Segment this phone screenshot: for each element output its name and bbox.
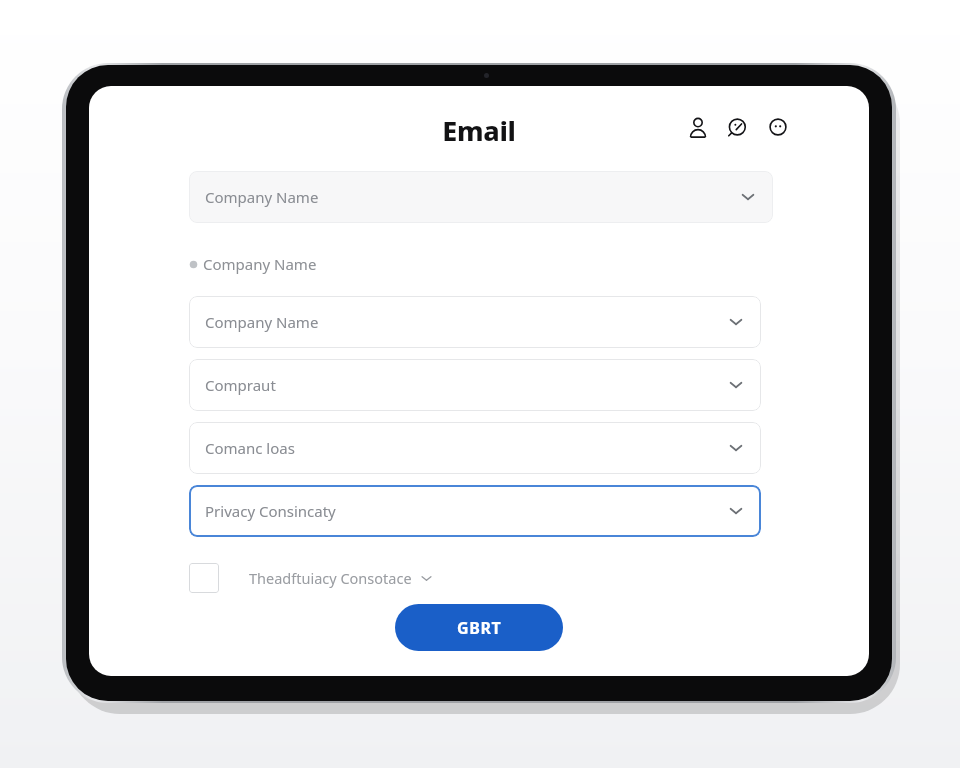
staticText: Compraut <box>205 375 276 395</box>
staticText: Privacy Consincaty <box>205 501 336 521</box>
button[interactable]: More options <box>763 112 793 142</box>
staticText: GBRT <box>457 617 502 639</box>
staticText: Company Name <box>205 187 319 207</box>
staticText: Comanc loas <box>205 438 295 458</box>
button[interactable]: Comanc loas <box>189 422 761 474</box>
button[interactable]: Compraut <box>189 359 761 411</box>
button[interactable]: Privacy Consincaty <box>189 485 761 537</box>
button[interactable]: Theadftuiacy Consotace <box>189 561 433 595</box>
staticText: Theadftuiacy Consotace <box>249 568 412 588</box>
staticText: Email <box>89 112 869 149</box>
staticText: Company Name <box>205 312 319 332</box>
button[interactable]: Support <box>723 112 753 142</box>
button[interactable]: Company Name <box>189 171 773 223</box>
staticText: Company Name <box>203 254 317 274</box>
button[interactable]: GBRT <box>395 604 563 651</box>
button[interactable]: Company Name <box>189 296 761 348</box>
button[interactable]: Account <box>683 112 713 142</box>
